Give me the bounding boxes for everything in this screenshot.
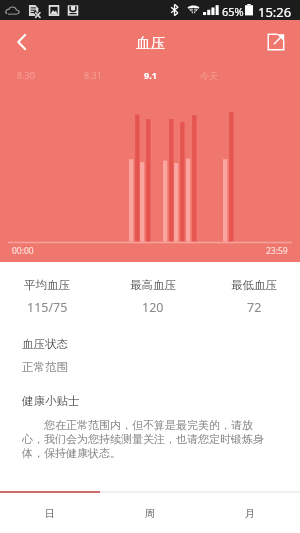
staticText: 月 <box>245 507 255 520</box>
staticText: 65% <box>222 4 244 19</box>
staticText: 120 <box>142 299 164 316</box>
staticText: 血压 <box>136 34 165 52</box>
staticText: 您在正常范围内，但不算是最完美的，请放 <box>22 417 253 432</box>
button[interactable]: 最高血压 <box>113 262 193 316</box>
staticText: 周 <box>145 507 155 520</box>
button[interactable]: 9.1 <box>129 66 171 84</box>
button[interactable]: 8.31 <box>72 66 114 84</box>
staticText: 8.30 <box>17 69 35 81</box>
staticText: 体，保持健康状态。 <box>22 446 121 460</box>
button[interactable]: 日 <box>0 493 100 533</box>
button[interactable]: 最低血压 <box>214 262 294 316</box>
button[interactable]: Back <box>0 28 42 56</box>
staticText: 心，我们会为您持续测量关注，也请您定时锻炼身 <box>22 432 264 446</box>
staticText: 今天 <box>200 70 218 81</box>
staticText: 72 <box>247 299 262 316</box>
staticText: 平均血压 <box>24 278 70 292</box>
staticText: 血压状态 <box>22 337 68 351</box>
staticText: 正常范围 <box>22 360 68 374</box>
button[interactable]: 平均血压 <box>7 262 87 316</box>
staticText: 00:00 <box>12 245 34 257</box>
staticText: 健康小贴士 <box>22 394 80 408</box>
staticText: 23:59 <box>266 245 288 257</box>
staticText: 115/75 <box>27 299 68 316</box>
button[interactable]: 周 <box>100 493 200 533</box>
staticText: 最高血压 <box>130 278 176 292</box>
staticText: 15:26 <box>258 3 292 21</box>
staticText: 8.31 <box>84 69 102 81</box>
button[interactable]: 月 <box>200 493 300 533</box>
button[interactable]: 今天 <box>188 66 230 84</box>
button[interactable]: 8.30 <box>5 66 47 84</box>
staticText: 日 <box>45 507 55 520</box>
button[interactable]: Share <box>258 28 300 56</box>
staticText: 最低血压 <box>231 278 277 292</box>
staticText: 9.1 <box>144 69 157 81</box>
